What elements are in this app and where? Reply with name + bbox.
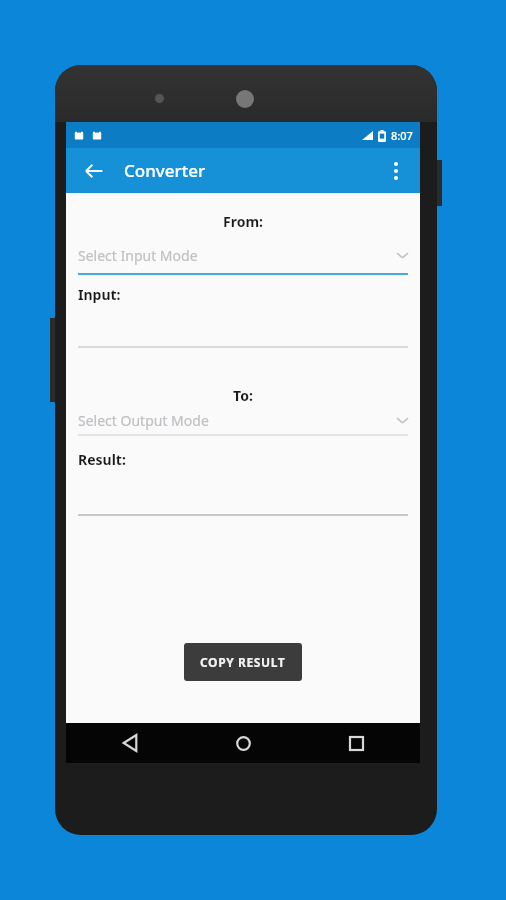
button[interactable]: Select Output Mode bbox=[78, 404, 408, 436]
staticText: To: bbox=[66, 386, 420, 405]
staticText: From: bbox=[66, 212, 420, 231]
button[interactable]: More options bbox=[376, 151, 416, 191]
button[interactable]: Recent apps bbox=[336, 723, 376, 763]
button[interactable]: Select Input Mode bbox=[78, 239, 408, 271]
staticText: COPY RESULT bbox=[200, 654, 286, 670]
staticText: Select Input Mode bbox=[78, 246, 198, 265]
staticText: Select Output Mode bbox=[78, 411, 209, 430]
staticText: 8:07 bbox=[391, 128, 413, 143]
button[interactable]: Back bbox=[110, 723, 150, 763]
staticText: Result: bbox=[78, 450, 126, 469]
button[interactable]: Input value bbox=[78, 305, 408, 347]
button[interactable]: Back bbox=[74, 151, 114, 191]
button[interactable]: Home bbox=[223, 723, 263, 763]
staticText: Converter bbox=[124, 159, 206, 182]
button[interactable]: COPY RESULT bbox=[184, 643, 302, 681]
staticText: Input: bbox=[78, 285, 121, 304]
